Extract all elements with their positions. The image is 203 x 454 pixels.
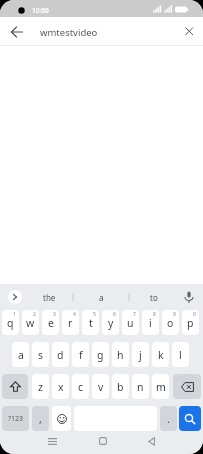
staticText: 2 [33,311,36,318]
button[interactable]: y [102,310,119,335]
staticText: z [38,380,43,394]
staticText: g [97,348,104,362]
button[interactable]: d [52,342,69,367]
button[interactable] [8,290,22,304]
button[interactable]: m [152,374,169,399]
button[interactable] [95,433,111,449]
staticText: 4 [73,311,76,318]
button[interactable]: z [32,374,49,399]
button[interactable]: the [26,284,72,310]
button[interactable]: , [32,406,49,431]
button[interactable] [143,433,159,449]
staticText: u [127,316,134,330]
staticText: a [99,292,104,303]
staticText: wmtestvideo [40,26,98,39]
staticText: s [38,348,44,362]
button[interactable]: n [132,374,149,399]
staticText: 8 [153,311,156,318]
staticText: the [43,292,56,303]
staticText: n [137,380,144,394]
staticText: 6 [113,311,116,318]
button[interactable]: o [162,310,179,335]
staticText: 10:00 [32,6,49,15]
staticText: f [79,348,83,362]
staticText: m [156,380,166,394]
button[interactable] [180,287,198,307]
button[interactable]: v [92,374,109,399]
button[interactable]: p [182,310,199,335]
staticText: 0 [193,311,196,318]
button[interactable]: l [172,342,189,367]
staticText: c [78,380,84,394]
staticText: q [7,316,14,330]
staticText: d [57,348,64,362]
staticText: o [167,316,174,330]
staticText: , [39,412,42,426]
button[interactable]: s [32,342,49,367]
button[interactable]: e [42,310,59,335]
button[interactable]: w [22,310,39,335]
button[interactable]: r [62,310,79,335]
staticText: i [149,316,152,330]
staticText: y [108,316,114,330]
staticText: l [179,348,182,362]
button[interactable] [6,21,28,43]
staticText: 9 [173,311,176,318]
staticText: j [139,348,142,362]
staticText: b [117,380,124,394]
staticText: p [187,316,194,330]
staticText: 3 [53,311,56,318]
button[interactable]: a [74,284,128,310]
button[interactable]: t [82,310,99,335]
button[interactable] [44,433,60,449]
staticText: r [68,316,73,330]
staticText: k [158,348,164,362]
button[interactable] [179,406,201,431]
button[interactable]: k [152,342,169,367]
staticText: . [167,412,170,426]
button[interactable]: x [52,374,69,399]
staticText: 1 [13,311,16,318]
button[interactable]: a [12,342,29,367]
staticText: e [48,316,54,330]
button[interactable]: g [92,342,109,367]
staticText: a [18,348,24,362]
button[interactable]: c [72,374,89,399]
staticText: h [117,348,124,362]
button[interactable]: to [130,284,178,310]
button[interactable]: b [112,374,129,399]
button[interactable]: ?123 [2,406,29,431]
staticText: w [26,316,35,330]
button[interactable]: . [160,406,177,431]
button[interactable]: q [2,310,19,335]
staticText: 5 [93,311,96,318]
button[interactable]: u [122,310,139,335]
button[interactable] [2,374,28,399]
staticText: t [89,316,93,330]
button[interactable] [179,21,200,42]
staticText: 7 [133,311,136,318]
staticText: to [150,292,158,303]
button[interactable]: i [142,310,159,335]
staticText: ?123 [8,414,24,424]
staticText: x [58,380,64,394]
button[interactable]: j [132,342,149,367]
button[interactable] [173,374,201,399]
button[interactable]: h [112,342,129,367]
button[interactable]: f [72,342,89,367]
button[interactable] [52,406,71,431]
staticText: v [98,380,104,394]
